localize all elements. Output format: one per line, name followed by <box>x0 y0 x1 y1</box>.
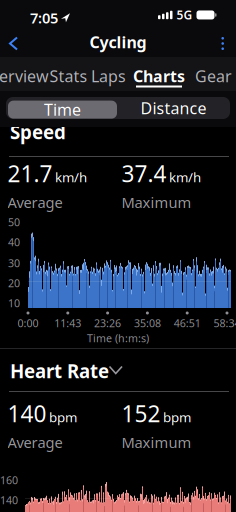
button[interactable]: Distance <box>0 91 109 109</box>
button[interactable]: Time <box>0 91 109 112</box>
staticText: 30 <box>8 256 20 270</box>
staticText: 21.7 <box>7 158 52 189</box>
staticText: 50 <box>8 215 20 229</box>
staticText: 140 <box>0 493 18 507</box>
staticText: 10 <box>8 296 20 310</box>
staticText: 40 <box>8 235 20 249</box>
staticText: 5G <box>176 7 192 23</box>
staticText: Charts <box>133 65 185 87</box>
staticText: Overview <box>0 65 49 87</box>
staticText: Speed <box>10 119 66 144</box>
staticText: Average <box>7 433 62 452</box>
staticText: Cycling <box>89 31 146 53</box>
staticText: Average <box>7 193 62 212</box>
staticText: Heart Rate <box>10 358 109 383</box>
staticText: Time <box>44 99 81 120</box>
button[interactable]: Charts <box>0 57 80 78</box>
staticText: km/h <box>55 168 87 186</box>
staticText: 160 <box>0 473 18 487</box>
staticText: 35:08 <box>134 316 161 330</box>
staticText: bpm <box>49 408 77 426</box>
button[interactable]: Heart Rate <box>0 0 99 25</box>
button[interactable] <box>0 31 17 55</box>
staticText: 58:34 <box>213 316 236 330</box>
staticText: 152 <box>121 398 160 429</box>
button[interactable]: Laps <box>0 57 80 78</box>
staticText: Time (h:m:s) <box>87 331 149 345</box>
button[interactable]: Gear <box>0 57 80 78</box>
staticText: 46:51 <box>174 316 201 330</box>
staticText: 20 <box>8 276 20 290</box>
staticText: 23:26 <box>94 316 121 330</box>
staticText: bpm <box>163 408 191 426</box>
staticText: 11:43 <box>54 316 81 330</box>
staticText: 140 <box>7 398 46 429</box>
staticText: 0:00 <box>17 316 38 330</box>
button[interactable]: Overview <box>0 57 80 78</box>
staticText: Distance <box>140 97 206 119</box>
staticText: Laps <box>91 65 126 87</box>
button[interactable]: Stats <box>0 57 80 78</box>
staticText: km/h <box>169 168 201 186</box>
staticText: 37.4 <box>121 158 166 189</box>
staticText: Maximum <box>121 433 191 452</box>
staticText: 7:05 <box>30 8 58 27</box>
staticText: Maximum <box>121 193 191 212</box>
staticText: Stats <box>49 65 87 87</box>
staticText: Gear <box>195 65 232 87</box>
button[interactable] <box>221 32 236 55</box>
